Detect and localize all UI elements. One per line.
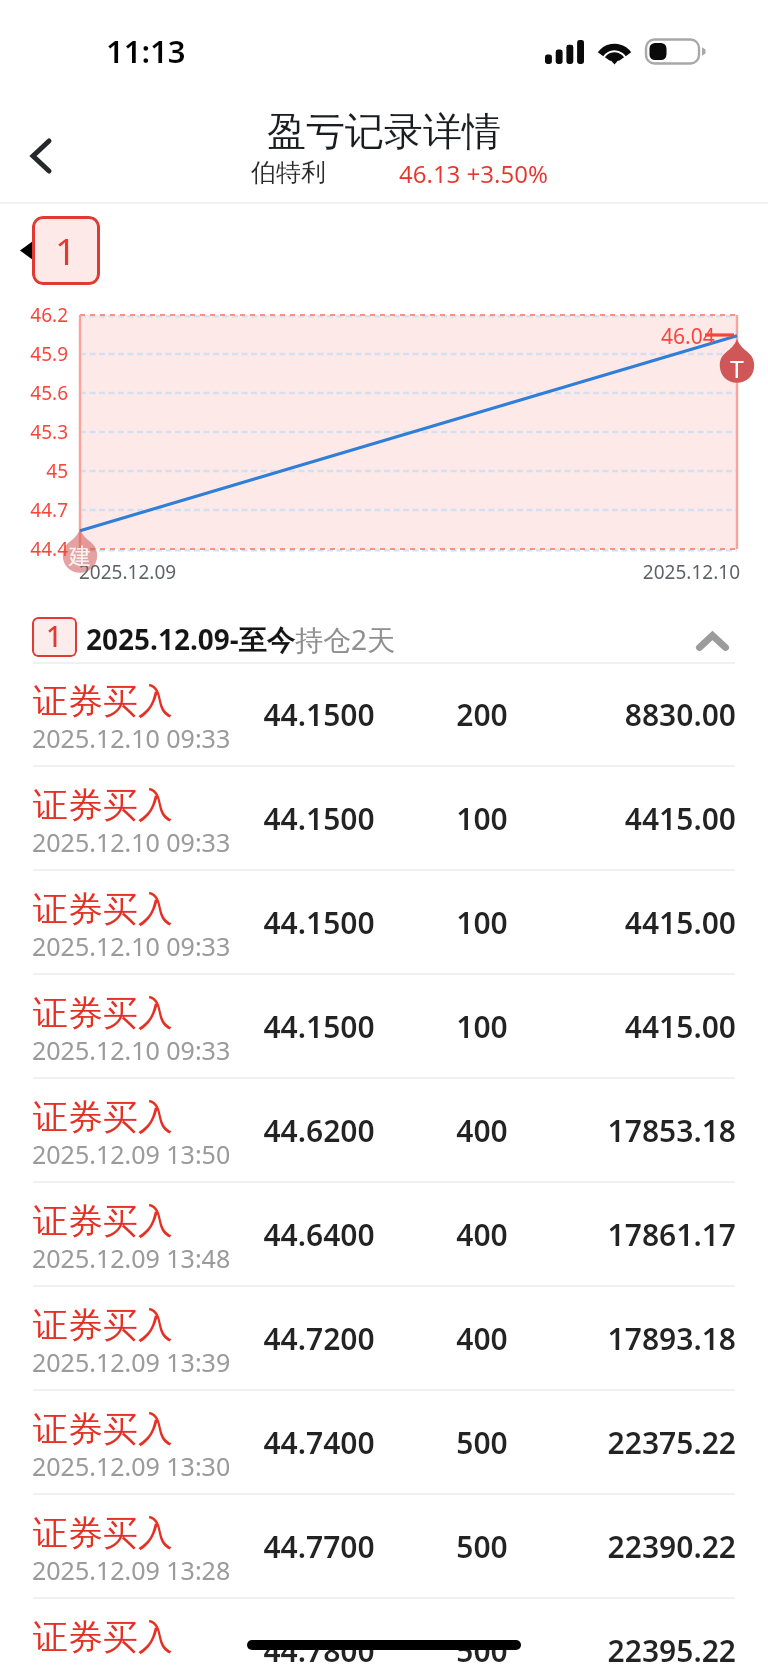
staticText: 17861.17 (0, 1214, 736, 1255)
staticText: 4415.00 (0, 1006, 736, 1047)
staticText: 45.9 (2, 341, 68, 367)
staticText: 44.7200 (243, 1318, 395, 1359)
staticText: 46.2 (2, 302, 68, 328)
staticText: 1 (46, 617, 63, 655)
staticText: 2025.12.09 13:39 (32, 1345, 231, 1379)
staticText: T (723, 352, 751, 385)
staticText: 2025.12.10 (0, 559, 740, 585)
staticText: 证券买入 (33, 1407, 173, 1451)
staticText: 100 (412, 1006, 552, 1047)
staticText: 8830.00 (0, 694, 736, 735)
staticText: 2025.12.09 (79, 559, 177, 585)
staticText: 2025.12.10 09:33 (32, 721, 231, 755)
staticText: 4415.00 (0, 798, 736, 839)
staticText: 44.7 (2, 497, 68, 523)
staticText: 2025.12.09 13:28 (32, 1553, 231, 1587)
staticText: 证券买入 (33, 887, 173, 931)
staticText: 22395.22 (0, 1630, 736, 1665)
staticText: 44.1500 (243, 694, 395, 735)
staticText: 证券买入 (33, 1303, 173, 1347)
staticText: 200 (412, 694, 552, 735)
staticText: 11:13 (106, 30, 186, 72)
staticText: 100 (412, 902, 552, 943)
button[interactable]: 证券买入 (0, 767, 768, 871)
button[interactable]: 证券买入 (0, 1287, 768, 1391)
staticText: 2025.12.09-至今 (86, 620, 295, 658)
staticText: 44.6400 (243, 1214, 395, 1255)
staticText: 证券买入 (33, 1615, 173, 1659)
staticText: 500 (412, 1422, 552, 1463)
staticText: 45.6 (2, 380, 68, 406)
staticText: 2025.12.09 13:48 (32, 1241, 231, 1275)
staticText: 2025.12.10 09:33 (32, 825, 231, 859)
staticText: 22375.22 (0, 1422, 736, 1463)
button[interactable]: 证券买入 (0, 975, 768, 1079)
button[interactable]: 证券买入 (0, 1079, 768, 1183)
staticText: 17853.18 (0, 1110, 736, 1151)
staticText: 伯特利 (251, 157, 326, 188)
staticText: 持仓2天 (295, 620, 396, 658)
button[interactable]: 证券买入 (0, 1183, 768, 1287)
staticText: 46.04 (661, 322, 715, 351)
staticText: 证券买入 (33, 991, 173, 1035)
staticText: 500 (412, 1526, 552, 1567)
staticText: 400 (412, 1318, 552, 1359)
staticText: 44.4 (2, 536, 68, 562)
staticText: 2025.12.09 13:30 (32, 1449, 231, 1483)
staticText: 证券买入 (33, 783, 173, 827)
button[interactable]: 1 (32, 216, 100, 285)
staticText: 400 (412, 1110, 552, 1151)
staticText: 500 (412, 1630, 552, 1665)
staticText: 1 (55, 225, 77, 275)
staticText: 44.6200 (243, 1110, 395, 1151)
staticText: 2025.12.10 09:33 (32, 929, 231, 963)
button[interactable]: Back (2, 116, 80, 196)
staticText: 45.3 (2, 419, 68, 445)
staticText: 4415.00 (0, 902, 736, 943)
staticText: 44.1500 (243, 798, 395, 839)
staticText: 17893.18 (0, 1318, 736, 1359)
staticText: 22390.22 (0, 1526, 736, 1567)
staticText: 证券买入 (33, 1095, 173, 1139)
staticText: 45 (2, 458, 68, 484)
staticText: 400 (412, 1214, 552, 1255)
staticText: 证券买入 (33, 679, 173, 723)
staticText: 44.7400 (243, 1422, 395, 1463)
button[interactable]: 证券买入 (0, 1391, 768, 1495)
staticText: 44.1500 (243, 902, 395, 943)
staticText: 2025.12.09 13:50 (32, 1137, 231, 1171)
staticText: 46.13 +3.50% (399, 157, 548, 190)
button[interactable]: 1 (0, 600, 768, 663)
staticText: 44.1500 (243, 1006, 395, 1047)
staticText: 盈亏记录详情 (0, 107, 768, 156)
button[interactable]: 证券买入 (0, 871, 768, 975)
button[interactable]: 证券买入 (0, 663, 768, 767)
staticText: 证券买入 (33, 1511, 173, 1555)
staticText: 100 (412, 798, 552, 839)
button[interactable]: 证券买入 (0, 1599, 768, 1665)
staticText: 建 (66, 543, 94, 571)
staticText: 44.7800 (243, 1630, 395, 1665)
staticText: 2025.12.10 09:33 (32, 1033, 231, 1067)
staticText: 证券买入 (33, 1199, 173, 1243)
staticText: 44.7700 (243, 1526, 395, 1567)
button[interactable]: 证券买入 (0, 1495, 768, 1599)
